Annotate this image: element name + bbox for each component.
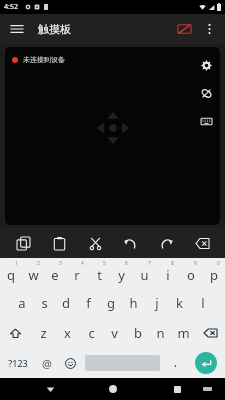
button[interactable]: Cut bbox=[82, 230, 108, 256]
button[interactable]: 9 bbox=[179, 258, 202, 288]
staticText: w bbox=[28, 266, 39, 284]
button[interactable]: Rotation lock bbox=[196, 83, 216, 103]
staticText: @ bbox=[42, 356, 52, 371]
staticText: z bbox=[40, 324, 47, 342]
button[interactable]: Emoji bbox=[58, 348, 82, 378]
staticText: ?123 bbox=[8, 357, 28, 369]
staticText: h bbox=[129, 294, 138, 312]
button[interactable]: 7 bbox=[133, 258, 156, 288]
staticText: 1 bbox=[15, 260, 18, 267]
staticText: b bbox=[134, 324, 142, 342]
button[interactable]: Home bbox=[103, 379, 123, 399]
staticText: 8 bbox=[171, 260, 174, 267]
button[interactable]: More options bbox=[198, 18, 220, 40]
button[interactable]: g bbox=[99, 288, 122, 318]
button[interactable]: h bbox=[122, 288, 145, 318]
staticText: . bbox=[174, 356, 177, 370]
staticText: c bbox=[88, 324, 95, 342]
staticText: 触摸板 bbox=[38, 22, 71, 36]
button[interactable]: Recent apps bbox=[167, 379, 187, 399]
button[interactable]: k bbox=[168, 288, 191, 318]
button[interactable]: Show keyboard bbox=[196, 111, 216, 131]
staticText: y bbox=[118, 266, 125, 284]
button[interactable]: Backspace bbox=[189, 230, 215, 256]
button[interactable]: 8 bbox=[156, 258, 179, 288]
button[interactable]: Redo bbox=[153, 230, 179, 256]
staticText: j bbox=[155, 294, 159, 312]
staticText: u bbox=[140, 266, 149, 284]
button[interactable]: Period bbox=[163, 348, 187, 378]
button[interactable]: x bbox=[55, 318, 79, 348]
staticText: 4 bbox=[81, 260, 84, 267]
staticText: o bbox=[187, 266, 195, 284]
staticText: l bbox=[201, 294, 205, 312]
button[interactable]: 1 bbox=[0, 258, 22, 288]
button[interactable]: 6 bbox=[110, 258, 133, 288]
button[interactable]: b bbox=[126, 318, 149, 348]
staticText: f bbox=[86, 294, 91, 312]
button[interactable]: 0 bbox=[202, 258, 225, 288]
button[interactable]: a bbox=[11, 288, 33, 318]
staticText: i bbox=[166, 266, 170, 284]
button[interactable]: 3 bbox=[44, 258, 66, 288]
button[interactable]: Open navigation menu bbox=[6, 18, 28, 40]
button[interactable]: d bbox=[55, 288, 77, 318]
staticText: x bbox=[64, 324, 71, 342]
staticText: q bbox=[7, 266, 15, 284]
button[interactable]: f bbox=[77, 288, 99, 318]
button[interactable]: At sign bbox=[35, 348, 58, 378]
button[interactable]: Touchpad surface bbox=[5, 47, 220, 225]
staticText: g bbox=[107, 294, 115, 312]
button[interactable]: Undo bbox=[117, 230, 143, 256]
staticText: m bbox=[177, 324, 190, 342]
staticText: k bbox=[176, 294, 183, 312]
staticText: e bbox=[51, 266, 59, 284]
button[interactable]: Paste bbox=[46, 230, 72, 256]
button[interactable]: n bbox=[149, 318, 172, 348]
button[interactable]: Switch input method bbox=[197, 379, 217, 399]
button[interactable]: c bbox=[79, 318, 103, 348]
staticText: 5 bbox=[103, 260, 106, 267]
button[interactable]: m bbox=[172, 318, 195, 348]
staticText: 2 bbox=[37, 260, 40, 267]
staticText: r bbox=[74, 266, 80, 284]
button[interactable]: l bbox=[191, 288, 214, 318]
button[interactable]: Enter bbox=[195, 352, 217, 374]
staticText: n bbox=[156, 324, 165, 342]
button[interactable]: Hide keyboard bbox=[40, 379, 60, 399]
staticText: p bbox=[210, 266, 218, 284]
staticText: 0 bbox=[217, 260, 220, 267]
button[interactable]: Settings bbox=[196, 55, 216, 75]
button[interactable]: j bbox=[145, 288, 168, 318]
staticText: a bbox=[18, 294, 26, 312]
staticText: 未连接到设备 bbox=[23, 55, 65, 64]
button[interactable]: Symbols bbox=[0, 348, 35, 378]
button[interactable]: s bbox=[33, 288, 55, 318]
button[interactable]: Copy bbox=[10, 230, 36, 256]
staticText: v bbox=[111, 324, 118, 342]
staticText: 3 bbox=[59, 260, 62, 267]
staticText: 7 bbox=[148, 260, 151, 267]
button[interactable]: z bbox=[31, 318, 55, 348]
button[interactable]: Shift bbox=[0, 318, 31, 348]
staticText: 9 bbox=[194, 260, 197, 267]
button[interactable]: v bbox=[103, 318, 126, 348]
staticText: s bbox=[41, 294, 48, 312]
button[interactable]: 4 bbox=[66, 258, 88, 288]
button[interactable]: Screen off / disconnected bbox=[173, 18, 195, 40]
staticText: d bbox=[62, 294, 70, 312]
staticText: t bbox=[97, 266, 102, 284]
staticText: 4:52 bbox=[4, 2, 18, 12]
button[interactable]: 5 bbox=[88, 258, 110, 288]
staticText: 6 bbox=[125, 260, 128, 267]
button[interactable]: Backspace bbox=[195, 318, 225, 348]
button[interactable]: 2 bbox=[22, 258, 44, 288]
